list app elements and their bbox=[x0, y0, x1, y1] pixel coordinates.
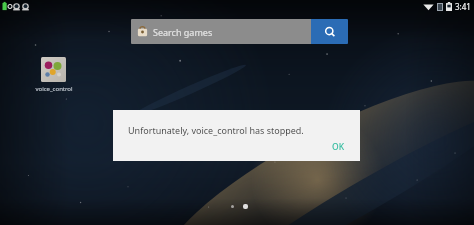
staticText: Unfortunately, voice_control has stopped… bbox=[128, 124, 304, 136]
button[interactable]: voice_control bbox=[32, 57, 75, 93]
button[interactable]: OK bbox=[327, 139, 350, 155]
staticText: 3:41 bbox=[455, 1, 471, 12]
button[interactable]: Search bbox=[311, 19, 348, 44]
staticText: Search games bbox=[153, 26, 213, 38]
staticText: OK bbox=[332, 141, 345, 153]
button[interactable]: Search games bbox=[131, 19, 348, 44]
staticText: voice_control bbox=[35, 85, 73, 93]
